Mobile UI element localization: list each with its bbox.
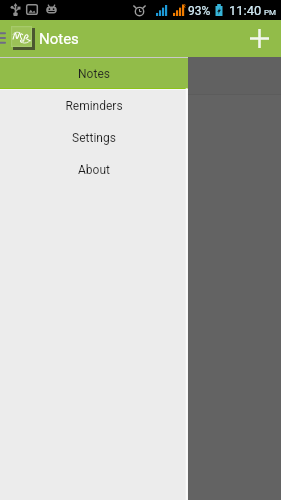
staticText: PM [264, 8, 277, 17]
staticText: Notes [78, 67, 110, 81]
button[interactable]: Settings [0, 122, 188, 154]
button[interactable]: Add note [237, 20, 281, 57]
button[interactable]: Reminders [0, 90, 188, 122]
staticText: Reminders [65, 99, 123, 113]
staticText: R [182, 2, 186, 9]
staticText: About [78, 163, 110, 177]
button[interactable]: About [0, 154, 188, 186]
staticText: 93% [188, 4, 211, 18]
staticText: Notes [39, 30, 79, 48]
button[interactable]: Notes, open navigation drawer [0, 20, 90, 57]
button[interactable]: Notes [0, 58, 188, 88]
staticText: 11:40 [229, 3, 262, 18]
staticText: Settings [72, 131, 116, 145]
